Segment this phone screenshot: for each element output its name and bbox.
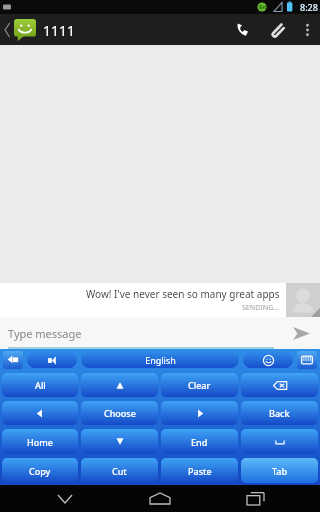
button[interactable]: More options (294, 14, 320, 45)
staticText: Back (269, 407, 290, 419)
button[interactable]: Backspace (241, 373, 318, 397)
staticText: Paste (188, 465, 212, 477)
staticText: Tab (272, 465, 288, 477)
button[interactable]: All (2, 373, 78, 397)
staticText: End (191, 436, 208, 448)
button[interactable]: Emoji (243, 352, 293, 368)
button[interactable]: Call (226, 14, 260, 45)
staticText: Home (27, 436, 53, 448)
staticText: 1111 (43, 21, 76, 40)
button[interactable]: Tab (241, 458, 318, 483)
button[interactable]: Space (241, 429, 318, 454)
button[interactable]: Keyboard settings (297, 351, 317, 369)
button[interactable]: Voice (27, 352, 77, 368)
button[interactable]: Clear (161, 373, 238, 397)
staticText: All (35, 379, 46, 391)
button[interactable]: Home (130, 485, 190, 512)
button[interactable]: Recents (225, 485, 285, 512)
staticText: 8:28 (300, 1, 318, 13)
button[interactable]: Copy (2, 458, 78, 483)
staticText: Type message (8, 326, 82, 341)
staticText: English (145, 354, 176, 366)
button[interactable]: Back (35, 485, 95, 512)
staticText: Cut (112, 465, 127, 477)
button[interactable]: Attach (260, 14, 294, 45)
button[interactable]: Home (2, 429, 78, 454)
button[interactable]: Right (161, 401, 238, 425)
button[interactable]: Choose (81, 401, 158, 425)
staticText: SENDING... (242, 303, 280, 313)
button[interactable]: Type message (8, 317, 274, 349)
staticText: En (259, 3, 267, 11)
button[interactable]: Back (241, 401, 318, 425)
button[interactable]: End (161, 429, 238, 454)
button[interactable]: Paste (161, 458, 238, 483)
button[interactable]: Up (81, 373, 158, 397)
button[interactable]: Wow! I've never seen so many great apps (0, 283, 286, 317)
staticText: Copy (29, 465, 51, 477)
button[interactable]: English (81, 352, 239, 368)
staticText: Wow! I've never seen so many great apps (86, 287, 280, 301)
staticText: Choose (104, 407, 136, 419)
staticText: Clear (188, 379, 211, 391)
button[interactable]: Down (81, 429, 158, 454)
button[interactable]: 1111 (0, 19, 80, 41)
button[interactable]: Left (2, 401, 78, 425)
button[interactable]: Undo (3, 351, 23, 369)
button[interactable]: Send (282, 317, 320, 349)
button[interactable]: Cut (81, 458, 158, 483)
